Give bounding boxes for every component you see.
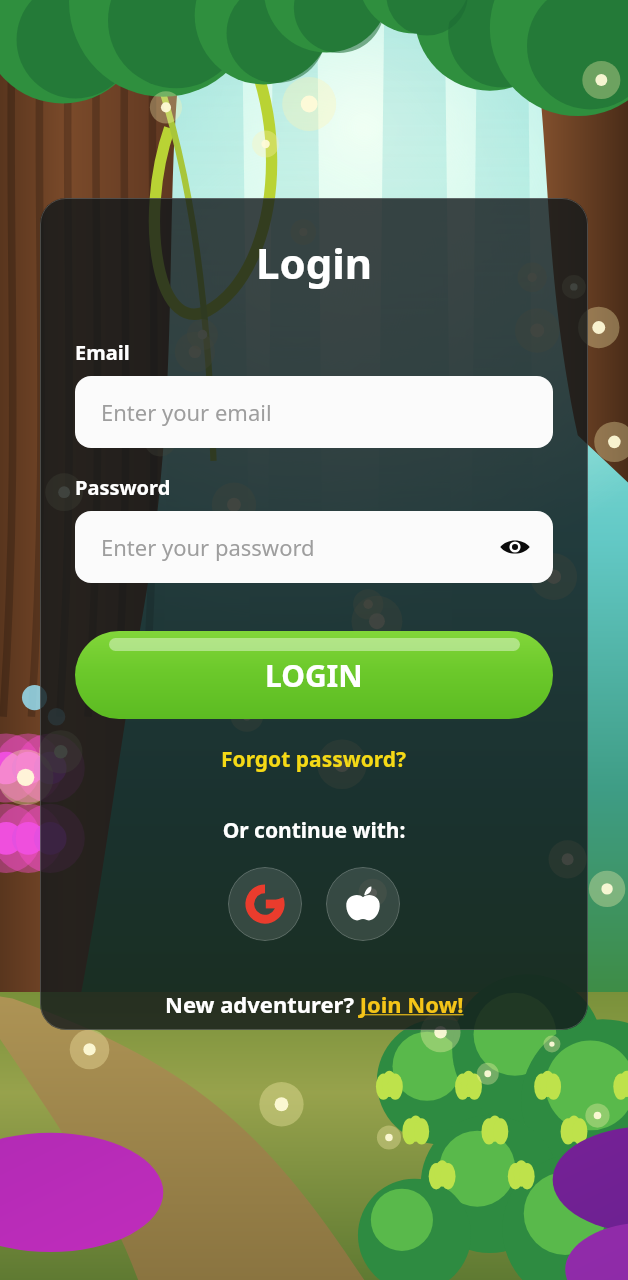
button[interactable]: Continue with Google: [228, 867, 302, 941]
button[interactable]: Enter your password: [75, 511, 553, 583]
button[interactable]: Forgot password?: [75, 745, 553, 774]
button[interactable]: New adventurer? Join Now!: [75, 989, 553, 1019]
staticText: New adventurer? Join Now!: [165, 989, 464, 1019]
staticText: Password: [75, 474, 171, 501]
staticText: Enter your email: [101, 397, 272, 427]
staticText: LOGIN: [265, 655, 363, 696]
staticText: Email: [75, 339, 130, 366]
staticText: Or continue with:: [75, 816, 553, 845]
button[interactable]: Enter your email: [75, 376, 553, 448]
button[interactable]: Continue with Apple: [326, 867, 400, 941]
staticText: Forgot password?: [221, 745, 407, 774]
button[interactable]: LOGIN: [75, 631, 553, 719]
button[interactable]: Show password: [493, 525, 537, 569]
staticText: Enter your password: [101, 532, 315, 562]
staticText: Login: [75, 234, 553, 291]
